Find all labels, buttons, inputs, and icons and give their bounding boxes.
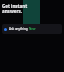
staticText: Get instant answers.: [2, 3, 28, 14]
button[interactable]: Ask anything: [2, 24, 62, 34]
staticText: New: [29, 27, 36, 31]
staticText: Ask anything: [9, 27, 28, 31]
